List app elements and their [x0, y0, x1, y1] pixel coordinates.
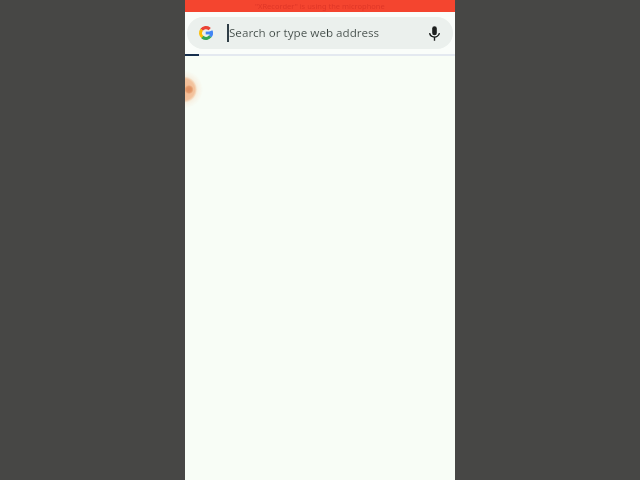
button[interactable]: Voice search	[423, 22, 445, 44]
staticText: Search or type web address	[229, 25, 423, 41]
button[interactable]: "XRecorder" is using the microphone	[185, 0, 455, 12]
staticText: "XRecorder" is using the microphone	[255, 1, 385, 11]
button[interactable]: Search or type web address	[187, 17, 453, 49]
